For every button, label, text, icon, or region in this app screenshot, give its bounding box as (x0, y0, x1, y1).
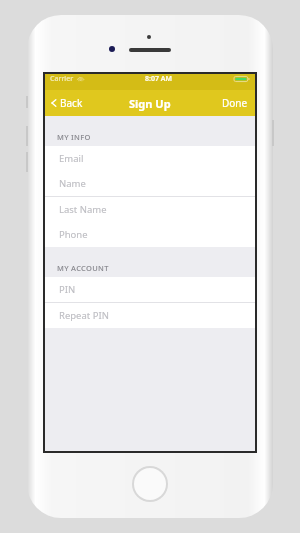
button[interactable]: Repeat PIN (45, 303, 255, 328)
button[interactable]: Back (45, 90, 91, 116)
staticText: Last Name (59, 203, 107, 216)
staticText: MY INFO (57, 132, 91, 142)
staticText: Name (59, 177, 86, 190)
button[interactable]: Last Name (45, 197, 255, 222)
button[interactable]: Name (45, 171, 255, 196)
button[interactable]: Home (132, 466, 168, 502)
staticText: Phone (59, 228, 88, 241)
staticText: Repeat PIN (59, 309, 109, 322)
staticText: PIN (59, 283, 76, 296)
staticText: Back (60, 96, 83, 110)
button[interactable]: Phone (45, 222, 255, 247)
staticText: MY ACCOUNT (57, 263, 109, 273)
staticText: Sign Up (129, 96, 171, 111)
button[interactable]: Email (45, 146, 255, 171)
button[interactable]: PIN (45, 277, 255, 302)
staticText: Done (222, 96, 248, 110)
staticText: Carrier (50, 74, 74, 84)
staticText: 8:07 AM (145, 74, 172, 84)
staticText: Email (59, 152, 84, 165)
button[interactable]: Done (215, 90, 255, 116)
